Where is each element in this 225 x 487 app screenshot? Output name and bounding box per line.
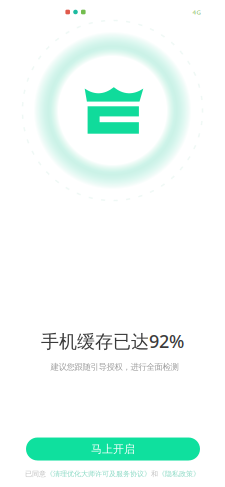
staticText: 马上开启	[91, 442, 135, 456]
button[interactable]: 《隐私政策》	[158, 469, 200, 478]
button[interactable]: 《清理优化大师许可及服务协议》	[46, 469, 151, 478]
button[interactable]: 马上开启	[26, 437, 200, 460]
staticText: 《隐私政策》	[158, 469, 200, 478]
staticText: 和	[151, 469, 158, 478]
staticText: 已同意	[25, 469, 46, 478]
staticText: 4G	[192, 8, 200, 16]
staticText: 手机缓存已达92%	[41, 329, 184, 353]
staticText: 《清理优化大师许可及服务协议》	[46, 469, 151, 478]
staticText: 建议您跟随引导授权，进行全面检测	[50, 362, 178, 372]
